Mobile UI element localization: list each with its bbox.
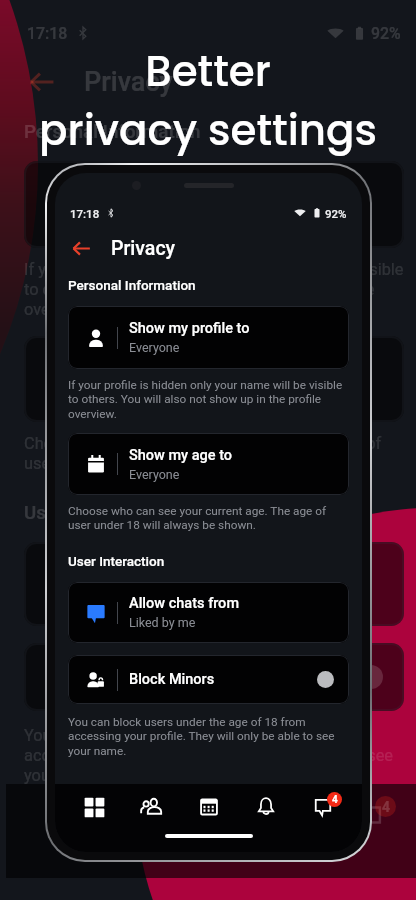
- staticText: Privacy: [84, 66, 173, 98]
- button[interactable]: Home: [29, 786, 90, 847]
- staticText: Choose who can see your current age. The…: [68, 504, 349, 532]
- staticText: Allow chats from: [108, 560, 261, 584]
- staticText: Everyone: [129, 340, 180, 355]
- staticText: Everyone: [129, 467, 180, 482]
- staticText: User Interaction: [24, 502, 158, 524]
- staticText: 17:18: [70, 207, 100, 220]
- staticText: 92%: [371, 24, 401, 43]
- staticText: 4: [382, 799, 390, 815]
- button[interactable]: Notifications: [244, 785, 288, 829]
- staticText: 17:18: [27, 24, 68, 43]
- staticText: If your profile is hidden only your name…: [24, 260, 404, 319]
- button[interactable]: Show my profile to: [24, 161, 404, 248]
- staticText: If your profile is hidden only your name…: [68, 378, 349, 421]
- button[interactable]: People: [106, 786, 167, 847]
- staticText: Liked by me: [129, 615, 196, 630]
- button[interactable]: Show my profile to: [68, 306, 349, 369]
- button[interactable]: Allow chats from: [68, 582, 349, 643]
- button[interactable]: Home: [72, 785, 116, 829]
- staticText: Show my age to: [108, 355, 251, 379]
- button[interactable]: Show my age to: [68, 433, 349, 495]
- staticText: Liked by me: [108, 588, 200, 608]
- button[interactable]: Notifications: [261, 786, 322, 847]
- button[interactable]: Show my age to: [24, 336, 404, 422]
- button[interactable]: Messages: [301, 785, 345, 829]
- button[interactable]: Calendar: [187, 785, 231, 829]
- button[interactable]: Allow chats from: [24, 542, 404, 626]
- staticText: Choose who can see your current age. The…: [24, 434, 404, 473]
- staticText: Allow chats from: [129, 595, 240, 612]
- staticText: You can block users under the age of 18 …: [68, 715, 349, 758]
- staticText: Everyone: [108, 209, 178, 229]
- staticText: 4: [332, 794, 338, 806]
- button[interactable]: Back: [68, 235, 94, 261]
- button[interactable]: Block Minors: [24, 643, 404, 711]
- button[interactable]: Messages: [339, 786, 400, 847]
- staticText: Show my profile to: [108, 181, 275, 205]
- staticText: Block Minors: [129, 671, 215, 688]
- staticText: Block Minors: [108, 665, 226, 689]
- staticText: Personal Information: [68, 277, 196, 293]
- staticText: You can block users under the age of 18 …: [24, 726, 404, 784]
- button[interactable]: People: [129, 785, 173, 829]
- staticText: privacy settings: [39, 101, 377, 160]
- button[interactable]: Back: [24, 64, 60, 100]
- staticText: Everyone: [108, 383, 178, 403]
- button[interactable]: Block Minors: [68, 655, 349, 704]
- staticText: Personal Information: [24, 121, 201, 143]
- button[interactable]: Calendar: [184, 786, 245, 847]
- staticText: Better: [145, 42, 271, 101]
- staticText: User Interaction: [68, 553, 165, 569]
- staticText: Show my profile to: [129, 320, 250, 337]
- staticText: Privacy: [111, 237, 176, 260]
- staticText: Show my age to: [129, 447, 233, 464]
- staticText: 92%: [325, 207, 347, 220]
